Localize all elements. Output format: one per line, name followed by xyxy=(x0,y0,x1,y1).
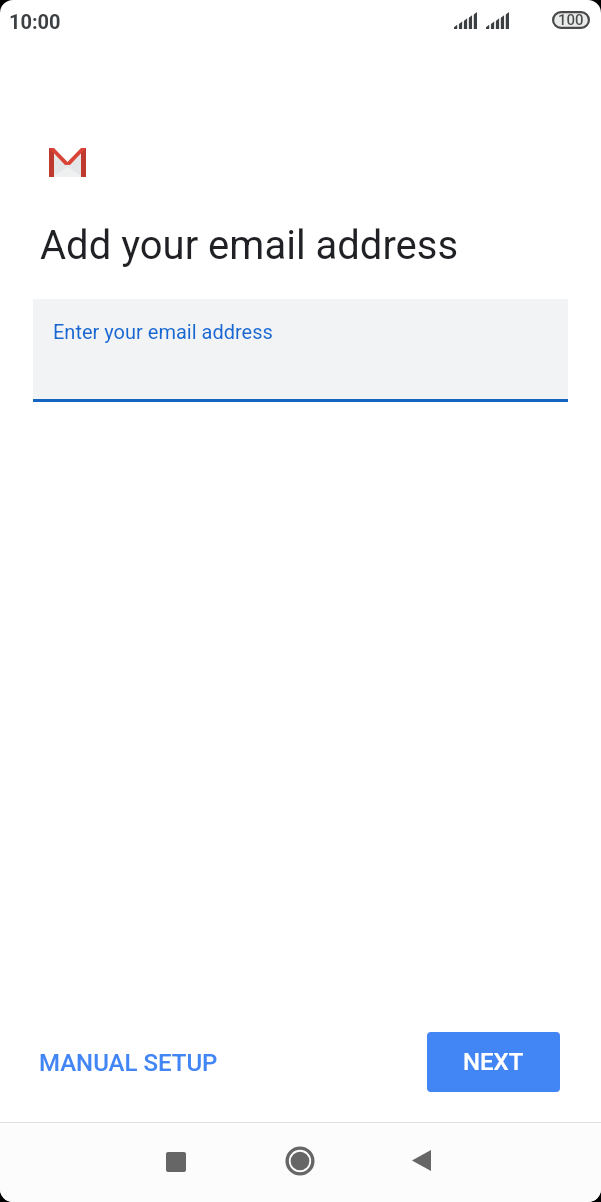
staticText: MANUAL SETUP xyxy=(39,1049,218,1077)
button[interactable]: Enter your email address xyxy=(33,299,568,402)
staticText: Enter your email address xyxy=(53,320,273,343)
button[interactable]: NEXT xyxy=(427,1032,560,1092)
staticText: NEXT xyxy=(463,1048,524,1076)
button[interactable]: Recent apps xyxy=(140,1126,211,1197)
staticText: 10:00 xyxy=(9,10,61,33)
staticText: Add your email address xyxy=(40,222,459,269)
button[interactable]: Home xyxy=(264,1125,335,1196)
staticText: 100 xyxy=(558,11,584,29)
button[interactable]: MANUAL SETUP xyxy=(23,1036,234,1090)
button[interactable]: Back xyxy=(386,1125,457,1196)
